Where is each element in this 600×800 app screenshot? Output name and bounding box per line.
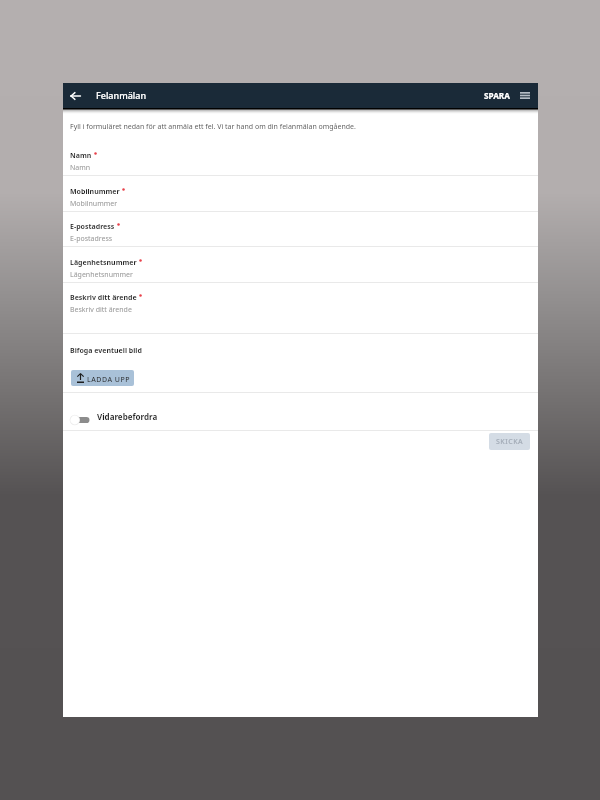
staticText: Fyll i formuläret nedan för att anmäla e… — [70, 122, 356, 132]
button[interactable]: Lägenhetsnummer — [63, 247, 538, 283]
staticText: Mobilnummer — [70, 187, 120, 197]
staticText: E-postadress — [70, 222, 115, 232]
button[interactable]: SPARA — [479, 86, 515, 105]
staticText: Beskriv ditt ärende — [70, 305, 132, 315]
button[interactable]: Beskriv ditt ärende — [63, 282, 538, 333]
staticText: Mobilnummer — [70, 199, 118, 209]
staticText: Lägenhetsnummer — [70, 270, 133, 280]
staticText: SKICKA — [496, 437, 524, 447]
staticText: Lägenhetsnummer — [70, 258, 137, 268]
staticText: LADDA UPP — [87, 375, 131, 385]
button[interactable]: SKICKA — [489, 433, 530, 450]
staticText: Vidarebefordra — [97, 411, 158, 422]
staticText: SPARA — [484, 90, 510, 101]
staticText: Felanmälan — [96, 89, 147, 101]
staticText: Namn — [70, 151, 92, 161]
staticText: Beskriv ditt ärende — [70, 293, 137, 303]
staticText: Namn — [70, 163, 91, 173]
button[interactable]: Menu — [514, 86, 535, 105]
button[interactable]: Namn — [63, 140, 538, 176]
staticText: Bifoga eventuell bild — [70, 346, 142, 356]
staticText: E-postadress — [70, 234, 113, 244]
button[interactable]: Back — [63, 83, 88, 108]
button[interactable]: E-postadress — [63, 211, 538, 247]
button[interactable]: Vidarebefordra — [63, 393, 538, 431]
button[interactable]: Mobilnummer — [63, 176, 538, 212]
button[interactable]: LADDA UPP — [71, 370, 134, 386]
